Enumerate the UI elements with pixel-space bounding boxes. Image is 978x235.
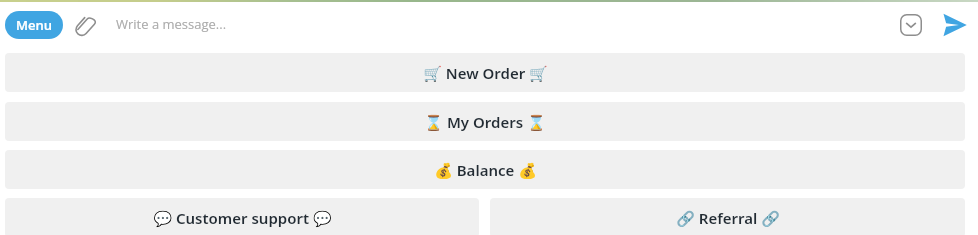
button[interactable]: Attach file <box>72 13 98 39</box>
staticText: 🛒 New Order 🛒 <box>423 63 548 83</box>
button[interactable]: Hide keyboard <box>891 3 931 46</box>
button[interactable]: Send message <box>931 3 978 46</box>
staticText: Menu <box>16 16 52 34</box>
button[interactable]: ⌛ My Orders ⌛ <box>5 102 965 141</box>
button[interactable]: Menu <box>5 11 63 39</box>
staticText: ⌛ My Orders ⌛ <box>424 112 546 132</box>
button[interactable]: 💰 Balance 💰 <box>5 150 965 189</box>
button[interactable]: 🛒 New Order 🛒 <box>5 53 965 92</box>
button[interactable]: 💬 Customer support 💬 <box>5 198 479 235</box>
button[interactable]: 🔗 Referral 🔗 <box>490 198 965 235</box>
staticText: 🔗 Referral 🔗 <box>676 208 780 228</box>
staticText: Write a message... <box>116 15 227 33</box>
staticText: 💬 Customer support 💬 <box>153 208 332 228</box>
staticText: 💰 Balance 💰 <box>434 160 537 180</box>
